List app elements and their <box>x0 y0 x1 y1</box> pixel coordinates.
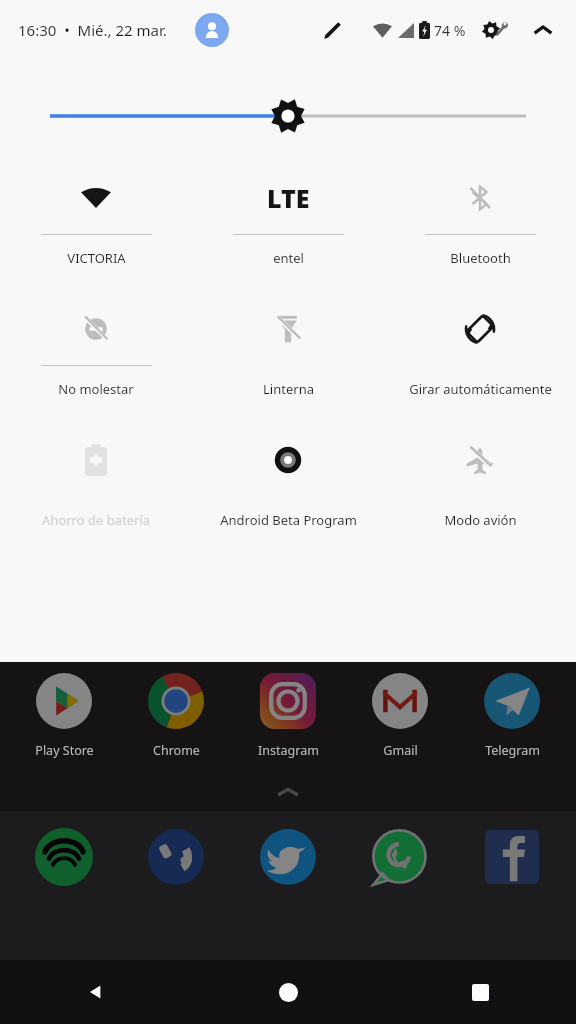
staticText: Chrome <box>153 742 200 759</box>
staticText: Android Beta Program <box>220 511 357 529</box>
staticText: Instagram <box>258 742 319 759</box>
button[interactable]: VICTORIA <box>0 172 192 271</box>
staticText: No molestar <box>58 380 134 398</box>
staticText: Bluetooth <box>450 249 511 267</box>
button[interactable]: Play Store <box>8 666 120 763</box>
staticText: 16:30 • Mié., 22 mar. <box>18 20 167 40</box>
button[interactable]: Instagram <box>232 666 344 763</box>
button[interactable]: Brightness <box>0 98 576 134</box>
button[interactable]: Ahorro de batería <box>0 434 192 533</box>
staticText: 74 % <box>434 21 466 40</box>
button[interactable] <box>232 825 344 889</box>
staticText: Gmail <box>383 742 418 759</box>
button[interactable]: Telegram <box>456 666 568 763</box>
staticText: Ahorro de batería <box>42 511 150 529</box>
button[interactable]: Collapse <box>528 15 558 45</box>
button[interactable]: LTE <box>192 172 384 271</box>
staticText: Telegram <box>485 742 540 759</box>
button[interactable]: Recents <box>384 960 576 1024</box>
button[interactable]: Edit <box>317 15 347 45</box>
staticText: VICTORIA <box>67 249 126 267</box>
button[interactable]: Home <box>192 960 384 1024</box>
button[interactable]: No molestar <box>0 303 192 402</box>
button[interactable]: Linterna <box>192 303 384 402</box>
button[interactable] <box>456 825 568 889</box>
button[interactable]: Modo avión <box>384 434 576 533</box>
button[interactable]: Girar automáticamente <box>384 303 576 402</box>
button[interactable]: Gmail <box>344 666 456 763</box>
staticText: Modo avión <box>444 511 517 529</box>
button[interactable]: User <box>195 13 229 47</box>
staticText: Linterna <box>263 380 314 398</box>
button[interactable] <box>344 825 456 889</box>
staticText: entel <box>273 249 304 267</box>
button[interactable] <box>120 825 232 889</box>
staticText: Play Store <box>35 742 94 759</box>
button[interactable] <box>8 825 120 889</box>
button[interactable]: Android Beta Program <box>192 434 384 533</box>
staticText: LTE <box>267 181 310 215</box>
button[interactable]: Chrome <box>120 666 232 763</box>
staticText: Girar automáticamente <box>409 380 552 398</box>
button[interactable]: Back <box>0 960 192 1024</box>
button[interactable]: Settings <box>480 15 510 45</box>
button[interactable]: Bluetooth <box>384 172 576 271</box>
